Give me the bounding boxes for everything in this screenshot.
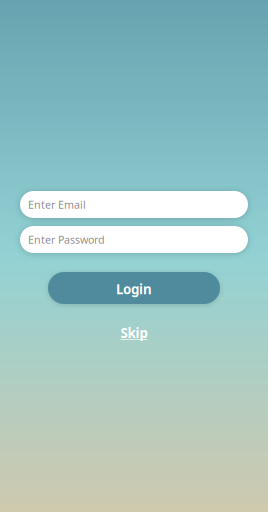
staticText: Enter Email	[28, 197, 86, 212]
button[interactable]: Enter Email	[20, 191, 248, 218]
staticText: Login	[116, 280, 152, 298]
staticText: Skip	[120, 324, 147, 342]
staticText: Enter Password	[28, 232, 105, 247]
button[interactable]: Skip	[120, 324, 147, 342]
button[interactable]: Login	[48, 272, 220, 304]
button[interactable]: Enter Password	[20, 226, 248, 253]
